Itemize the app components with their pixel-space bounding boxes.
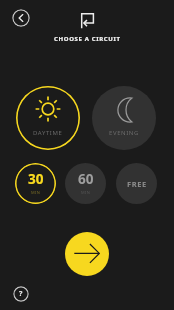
button[interactable]: Help [13, 286, 29, 302]
button[interactable]: EVENING [92, 86, 156, 150]
button[interactable]: 30 [15, 163, 56, 204]
button[interactable]: DAYTIME [16, 86, 80, 150]
staticText: 30 [28, 170, 44, 188]
button[interactable]: Continue [65, 232, 109, 276]
button[interactable]: Loop [77, 8, 98, 29]
staticText: 60 [78, 170, 94, 188]
button[interactable]: FREE [116, 163, 157, 204]
staticText: MIN [31, 190, 41, 195]
staticText: DAYTIME [33, 129, 63, 137]
staticText: MIN [81, 190, 91, 195]
button[interactable]: 60 [65, 163, 106, 204]
button[interactable]: Back [12, 9, 30, 27]
staticText: EVENING [109, 129, 139, 137]
staticText: CHOOSE A CIRCUIT [54, 35, 121, 43]
staticText: FREE [127, 179, 147, 189]
staticText: ? [19, 289, 23, 299]
